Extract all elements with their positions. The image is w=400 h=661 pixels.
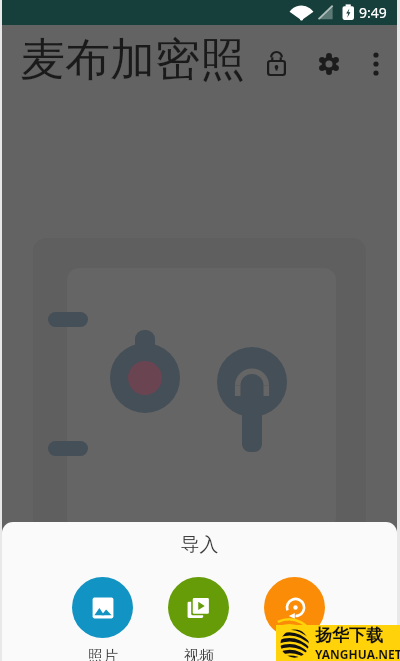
staticText: 照片 (88, 647, 118, 661)
button[interactable]: Settings (309, 44, 349, 84)
staticText: 9:49 (359, 3, 387, 22)
staticText: 视频 (184, 647, 214, 661)
staticText: 麦布加密照 (20, 32, 245, 89)
button[interactable]: 照片 (72, 577, 133, 661)
staticText: 导入 (2, 533, 397, 557)
button[interactable]: Lock (256, 43, 296, 83)
button[interactable]: More options (356, 44, 396, 84)
staticText: 扬华下载 (315, 625, 383, 646)
button[interactable]: Restore (264, 577, 325, 638)
button[interactable]: 视频 (168, 577, 229, 661)
staticText: YANGHUA.NET (315, 646, 400, 661)
